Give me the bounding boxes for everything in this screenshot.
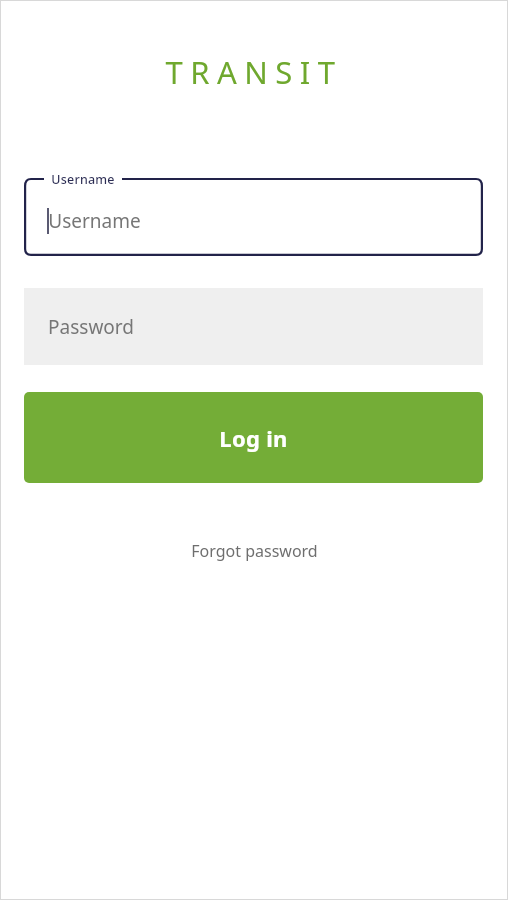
button[interactable]: Log in [24, 392, 483, 483]
staticText: Username [51, 171, 115, 188]
button[interactable]: Forgot password [177, 534, 332, 568]
staticText: Username [48, 208, 141, 234]
button[interactable]: Username [24, 172, 483, 256]
staticText: Password [48, 314, 134, 340]
staticText: Forgot password [191, 540, 318, 562]
button[interactable]: Password [24, 288, 483, 365]
staticText: TRANSIT [165, 51, 343, 93]
staticText: Log in [219, 423, 288, 453]
